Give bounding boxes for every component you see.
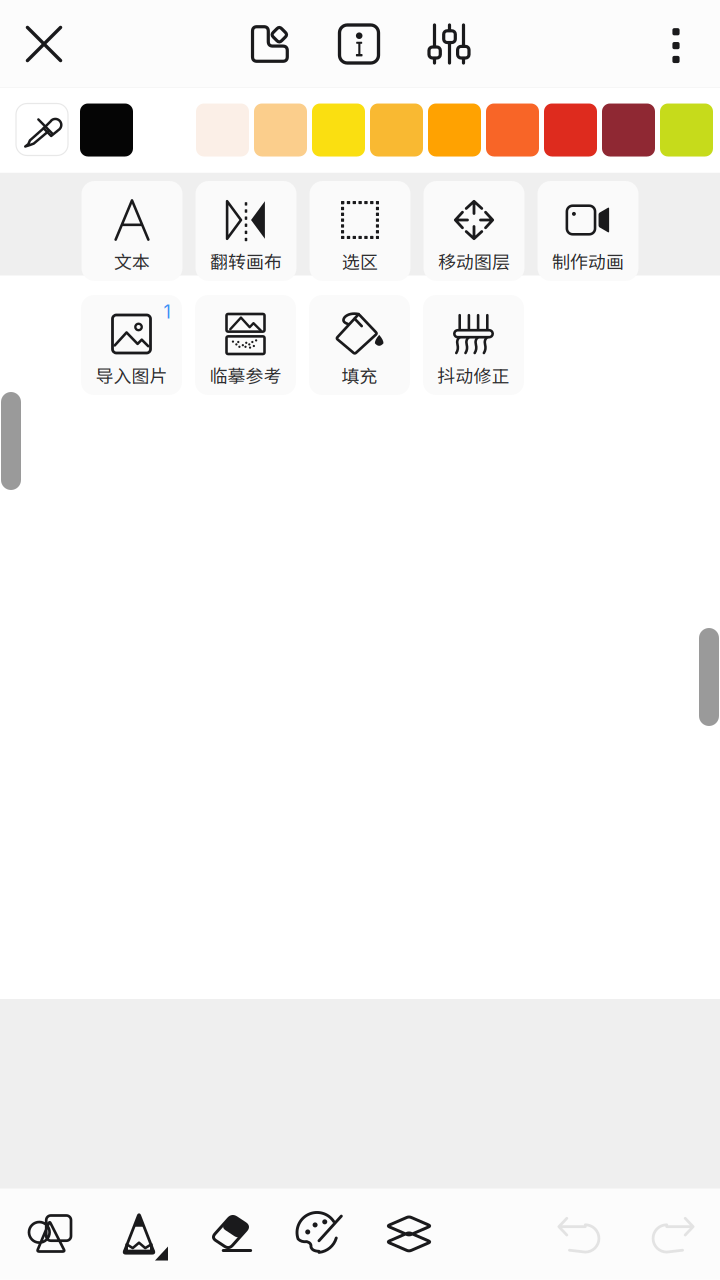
button[interactable]: 临摹参考 <box>195 295 296 395</box>
button[interactable]: Canvas <box>228 0 312 88</box>
button[interactable]: Close <box>0 0 88 88</box>
button[interactable]: 选区 <box>309 181 410 281</box>
button[interactable]: Shapes <box>11 1190 89 1276</box>
button[interactable]: Colour swatch 8 <box>486 103 539 156</box>
button[interactable]: Adjust <box>407 0 491 88</box>
staticText: 1 <box>163 301 170 323</box>
button[interactable]: Pencil <box>100 1190 178 1276</box>
button[interactable]: Colour swatch 1 <box>80 103 133 156</box>
button[interactable]: Colour palette <box>280 1190 358 1276</box>
button[interactable]: 填充 <box>309 295 410 395</box>
staticText: 填充 <box>341 362 377 388</box>
button[interactable]: 制作动画 <box>537 181 638 281</box>
button[interactable]: More <box>632 0 720 88</box>
staticText: 文本 <box>114 248 150 274</box>
button[interactable]: Eraser <box>190 1190 268 1276</box>
staticText: 临摹参考 <box>209 362 281 388</box>
staticText: 选区 <box>342 248 378 274</box>
button[interactable]: Redo <box>633 1190 711 1276</box>
button[interactable]: Layers <box>370 1190 448 1276</box>
button[interactable]: 导入图片 <box>81 295 182 395</box>
button[interactable]: Colour swatch 4 <box>254 103 307 156</box>
button[interactable]: 移动图层 <box>423 181 524 281</box>
button[interactable]: Undo <box>541 1190 619 1276</box>
button[interactable]: Colour swatch 10 <box>602 103 655 156</box>
button[interactable]: Eyedropper <box>16 103 68 155</box>
button[interactable]: Colour swatch 11 <box>660 103 713 156</box>
staticText: 导入图片 <box>95 362 167 388</box>
button[interactable]: Colour swatch 6 <box>370 103 423 156</box>
staticText: 移动图层 <box>438 248 510 274</box>
staticText: 制作动画 <box>552 248 624 274</box>
staticText: 翻转画布 <box>210 248 282 274</box>
button[interactable]: Colour swatch 5 <box>312 103 365 156</box>
button[interactable]: Colour swatch 7 <box>428 103 481 156</box>
button[interactable]: 翻转画布 <box>195 181 296 281</box>
button[interactable]: 抖动修正 <box>423 295 524 395</box>
button[interactable]: 文本 <box>81 181 182 281</box>
staticText: 抖动修正 <box>437 362 509 388</box>
button[interactable]: Info <box>317 0 401 88</box>
button[interactable]: Colour swatch 9 <box>544 103 597 156</box>
